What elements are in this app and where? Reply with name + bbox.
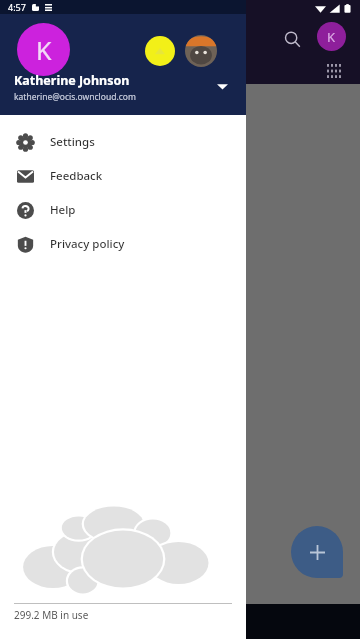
staticText: Help [50,202,76,218]
staticText: Feedback [50,168,103,184]
button[interactable]: Feedback [0,159,246,193]
staticText: K [327,28,336,46]
button[interactable]: Account [317,22,346,51]
button[interactable]: Add [291,526,343,578]
staticText: Katherine Johnson [14,72,130,89]
button[interactable]: Search [275,22,309,56]
staticText: K [36,33,52,67]
button[interactable]: Current account [17,23,70,76]
staticText: Privacy policy [50,236,125,252]
staticText: katherine@ocis.owncloud.com [14,91,136,103]
button[interactable]: Switch layout [320,57,348,85]
staticText: 4:57 [8,1,26,13]
button[interactable]: Switch account [210,74,234,98]
staticText: 299.2 MB in use [14,608,89,622]
button[interactable]: Account 2 [145,36,175,66]
button[interactable]: Privacy policy [0,227,246,261]
staticText: Settings [50,134,95,150]
button[interactable]: Settings [0,125,246,159]
button[interactable]: Account 3 [185,35,217,67]
button[interactable]: Help [0,193,246,227]
